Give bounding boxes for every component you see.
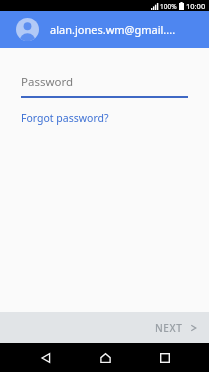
button[interactable]: Recent apps	[154, 347, 176, 369]
staticText: alan.jones.wm@gmail....	[50, 22, 176, 37]
staticText: Forgot password?	[21, 111, 109, 125]
button[interactable]: Password	[0, 74, 209, 98]
staticText: NEXT	[155, 321, 183, 335]
button[interactable]: NEXT	[143, 315, 209, 341]
staticText: 10:00	[186, 1, 206, 11]
button[interactable]: Forgot password?	[21, 111, 109, 125]
button[interactable]: Home	[94, 347, 116, 369]
button[interactable]: alan.jones.wm@gmail....	[0, 11, 209, 48]
button[interactable]: Back	[35, 347, 57, 369]
staticText: Password	[21, 74, 74, 90]
staticText: 100%	[160, 2, 177, 11]
